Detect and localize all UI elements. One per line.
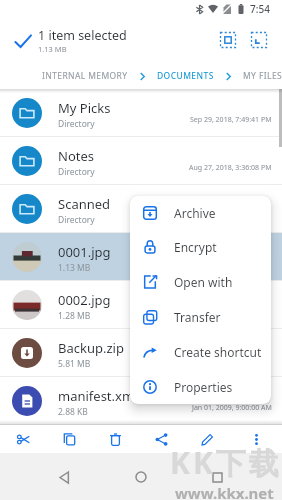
button[interactable]: 0002.jpg	[0, 281, 282, 329]
staticText: Directory	[58, 118, 95, 130]
button[interactable]: manifest.xml	[0, 377, 282, 425]
staticText: Archive	[174, 205, 216, 221]
button[interactable]: Archive	[130, 196, 271, 230]
staticText: Aug 27, 2018, 3:36:08 PM	[189, 163, 272, 173]
staticText: KK下载	[170, 442, 282, 483]
staticText: Properties	[174, 379, 233, 395]
staticText: Encrypt	[174, 239, 217, 255]
button[interactable]: Encrypt	[130, 230, 271, 264]
staticText: Notes	[58, 147, 94, 165]
button[interactable]	[184, 425, 230, 453]
staticText: Backup.zip	[58, 339, 124, 357]
button[interactable]	[0, 425, 46, 453]
button[interactable]: 0001.jpg	[0, 233, 282, 281]
button[interactable]	[46, 425, 92, 453]
staticText: 5.81 MB	[58, 358, 91, 370]
staticText: Jan 01, 2009, 9:00:00 AM	[192, 403, 272, 413]
staticText: manifest.xml	[58, 387, 138, 405]
staticText: Scanned	[58, 195, 111, 213]
staticText: 2.88 KB	[58, 406, 88, 418]
button[interactable]	[138, 425, 184, 453]
staticText: 1.13 MB	[58, 262, 91, 274]
staticText: Create shortcut	[174, 344, 262, 360]
button[interactable]: Transfer	[130, 299, 271, 334]
button[interactable]: Create shortcut	[130, 334, 271, 369]
button[interactable]	[92, 425, 138, 453]
button[interactable]	[230, 425, 282, 453]
button[interactable]	[52, 465, 76, 489]
staticText: My Picks	[58, 99, 111, 117]
button[interactable]	[205, 465, 229, 489]
button[interactable]: Backup.zip	[0, 329, 282, 377]
button[interactable]	[13, 31, 33, 51]
button[interactable]: Scanned	[0, 185, 282, 233]
staticText: 7:54	[250, 2, 270, 16]
button[interactable]	[129, 465, 153, 489]
button[interactable]: Notes	[0, 137, 282, 185]
button[interactable]: MY FILES	[243, 70, 282, 82]
button[interactable]: INTERNAL MEMORY	[42, 70, 128, 82]
button[interactable]: Properties	[130, 369, 271, 404]
staticText: Transfer	[174, 309, 221, 325]
staticText: 1 item selected	[38, 27, 127, 44]
staticText: 0001.jpg	[58, 243, 111, 261]
button[interactable]: Open with	[130, 264, 271, 299]
staticText: Open with	[174, 274, 233, 290]
staticText: 1.13 MB	[38, 44, 67, 54]
button[interactable]	[251, 32, 267, 48]
staticText: Directory	[58, 214, 95, 226]
staticText: Directory	[58, 166, 95, 178]
staticText: 1.28 MB	[58, 310, 91, 322]
button[interactable]: My Picks	[0, 89, 282, 137]
staticText: Sep 29, 2018, 7:49:41 PM	[190, 115, 272, 125]
button[interactable]	[220, 32, 236, 48]
staticText: 0002.jpg	[58, 291, 111, 309]
button[interactable]: DOCUMENTS	[157, 70, 214, 82]
staticText: www.kkx.net	[175, 483, 274, 500]
